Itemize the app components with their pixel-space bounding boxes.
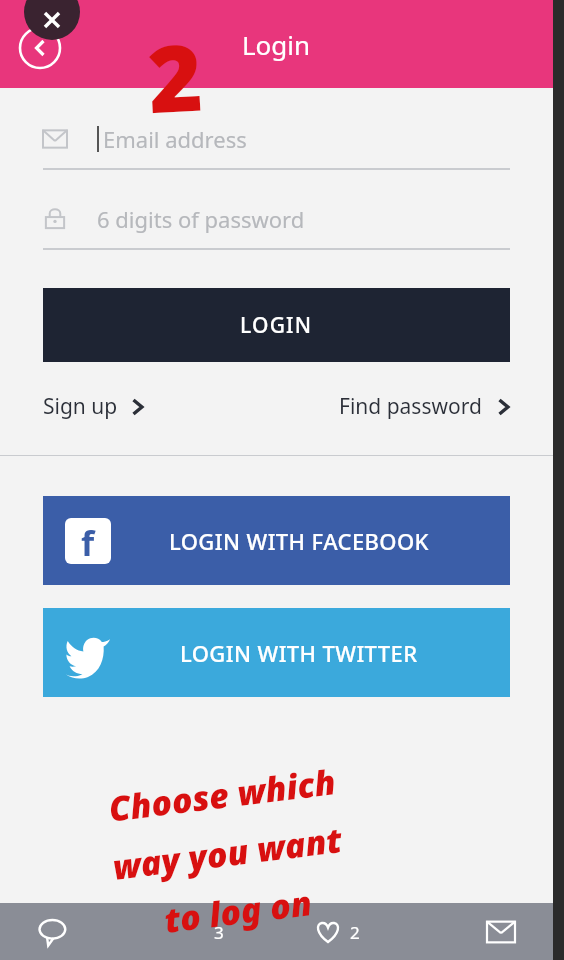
staticText: to log on [162, 879, 314, 943]
button[interactable]: Comments [38, 917, 68, 947]
staticText: LOGIN WITH FACEBOOK [169, 526, 429, 556]
button[interactable]: 6 digits of password [43, 198, 510, 240]
staticText: 6 digits of password [97, 204, 305, 234]
staticText: Email address [103, 124, 247, 154]
button[interactable]: Messages [487, 918, 515, 946]
staticText: 2 [145, 13, 205, 140]
staticText: Find password [339, 392, 482, 421]
staticText: 3 [214, 921, 224, 944]
button[interactable]: Back [18, 26, 62, 70]
button[interactable]: Email address [43, 118, 510, 160]
staticText: Choose which [106, 758, 338, 832]
staticText: LOGIN WITH TWITTER [180, 638, 418, 668]
button[interactable]: Find password [339, 386, 510, 427]
staticText: 2 [350, 921, 360, 944]
staticText: Sign up [43, 392, 118, 421]
staticText: f [81, 520, 95, 564]
button[interactable]: Like [314, 918, 360, 946]
staticText: way you want [110, 816, 345, 890]
button[interactable]: Sign up [43, 386, 144, 427]
staticText: LOGIN [240, 311, 313, 340]
button[interactable]: Close [24, 0, 80, 40]
button[interactable]: LOGIN [43, 288, 510, 362]
staticText: Login [242, 27, 311, 62]
button[interactable]: LOGIN WITH TWITTER [43, 608, 510, 697]
button[interactable]: f [43, 496, 510, 585]
